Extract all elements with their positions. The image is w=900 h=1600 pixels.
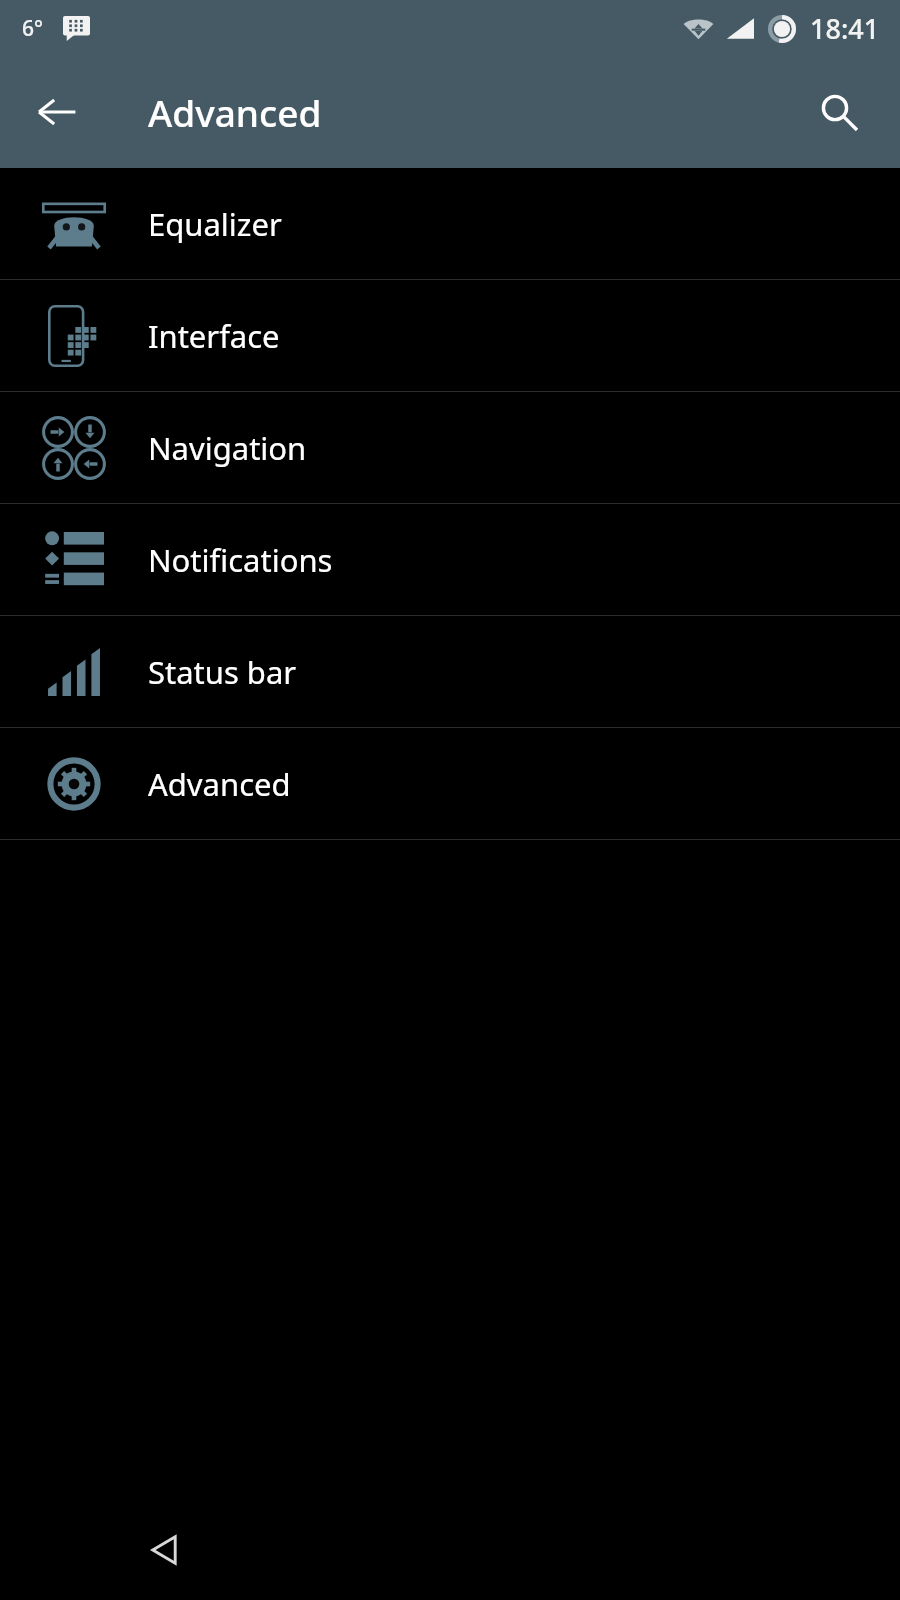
staticText: Interface [148,315,280,357]
staticText: 6° [22,14,43,43]
staticText: Equalizer [148,203,282,245]
staticText: Status bar [148,651,297,693]
button[interactable]: Notifications [0,504,900,615]
button[interactable]: Navigation [0,392,900,503]
staticText: Advanced [148,87,322,137]
button[interactable]: Equalizer [0,168,900,279]
button[interactable]: Status bar [0,616,900,727]
button[interactable]: Back [128,1513,202,1587]
staticText: Notifications [148,539,333,581]
button[interactable]: Search [804,77,874,147]
staticText: Advanced [148,763,291,805]
staticText: Navigation [148,427,307,469]
button[interactable]: Interface [0,280,900,391]
staticText: 18:41 [810,10,880,47]
button[interactable]: Back [22,77,92,147]
button[interactable]: Advanced [0,728,900,839]
